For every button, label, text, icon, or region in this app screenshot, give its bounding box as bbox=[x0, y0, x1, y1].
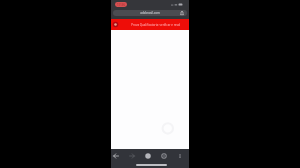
button[interactable]: More options bbox=[175, 151, 185, 161]
button[interactable]: Back bbox=[111, 151, 121, 161]
button[interactable]: Forward bbox=[127, 151, 137, 161]
button[interactable]: Tabs bbox=[159, 151, 169, 161]
button[interactable]: Prova Qualificatoria: verificar e resolv… bbox=[111, 19, 189, 30]
button[interactable]: adsbrasil.com bbox=[113, 10, 187, 16]
button[interactable]: Warning bbox=[112, 21, 119, 28]
staticText: adsbrasil.com bbox=[140, 11, 160, 15]
button[interactable]: Home bbox=[143, 151, 153, 161]
staticText: 17:36 bbox=[117, 3, 125, 7]
button[interactable]: Share page bbox=[179, 10, 185, 16]
staticText: Prova Qualificatoria: verificar e resolv… bbox=[131, 23, 180, 27]
